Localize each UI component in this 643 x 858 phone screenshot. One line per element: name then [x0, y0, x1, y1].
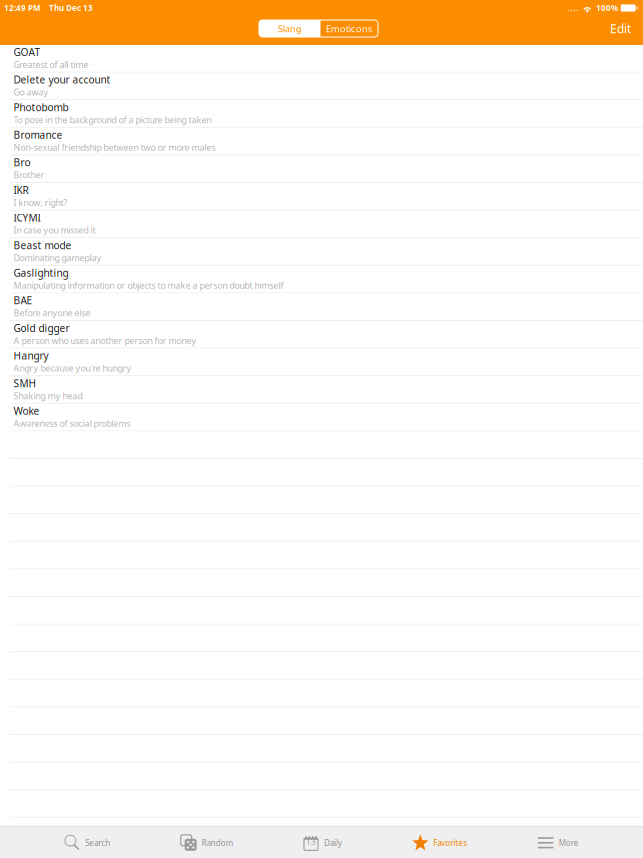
staticText: Dominating gameplay [13, 252, 101, 264]
button[interactable]: 13 [297, 827, 348, 858]
staticText: Awareness of social problems [13, 417, 130, 429]
button[interactable]: Search [58, 827, 116, 858]
button[interactable]: Edit [598, 16, 643, 41]
staticText: Greatest of all time [13, 58, 88, 70]
staticText: BAE [13, 293, 32, 307]
button[interactable]: Bromance [0, 128, 643, 155]
staticText: Emoticons [326, 22, 373, 35]
button[interactable]: Random [175, 827, 239, 858]
button[interactable]: Gaslighting [0, 266, 643, 293]
button[interactable] [0, 818, 643, 845]
button[interactable]: More [532, 827, 585, 858]
staticText: Shaking my head [13, 390, 82, 402]
staticText: SMH [13, 376, 36, 390]
staticText: Hangry [13, 349, 48, 362]
button[interactable]: Hangry [0, 349, 643, 376]
button[interactable]: Favorites [406, 827, 473, 858]
staticText: Thu Dec 13 [49, 3, 93, 13]
staticText: Search [85, 837, 110, 848]
staticText: Gaslighting [13, 266, 68, 280]
staticText: Woke [13, 404, 39, 418]
staticText: Angry because you're hungry [13, 362, 131, 374]
button[interactable]: SMH [0, 376, 643, 404]
staticText: To pose in the background of a picture b… [13, 114, 211, 126]
staticText: A person who uses another person for mon… [13, 334, 196, 346]
button[interactable] [0, 707, 643, 735]
button[interactable]: GOAT [0, 45, 643, 73]
button[interactable]: IKR [0, 183, 643, 211]
button[interactable]: Woke [0, 404, 643, 431]
button[interactable]: BAE [0, 293, 643, 321]
staticText: Slang [278, 22, 302, 35]
button[interactable]: Emoticons [320, 20, 378, 37]
staticText: Bro [13, 155, 30, 169]
button[interactable]: Gold digger [0, 321, 643, 349]
staticText: IKR [13, 183, 28, 197]
staticText: Go away [13, 86, 48, 98]
button[interactable]: Slang [259, 20, 320, 37]
staticText: ICYMI [13, 211, 40, 224]
staticText: I know, right? [13, 196, 67, 208]
staticText: Non-sexual friendship between two or mor… [13, 141, 215, 153]
staticText: Favorites [433, 837, 467, 848]
staticText: Photobomb [13, 100, 68, 114]
staticText: More [559, 837, 579, 848]
staticText: 13 [306, 836, 316, 847]
staticText: Random [202, 837, 233, 848]
button[interactable]: Photobomb [0, 100, 643, 128]
staticText: Manipulating information or objects to m… [13, 279, 283, 291]
staticText: 100% [596, 3, 618, 13]
staticText: Bromance [13, 128, 62, 142]
staticText: Before anyone else [13, 307, 90, 319]
staticText: Brother [13, 169, 44, 181]
staticText: Gold digger [13, 321, 69, 335]
button[interactable]: ICYMI [0, 211, 643, 238]
button[interactable] [0, 569, 643, 597]
staticText: Edit [610, 20, 631, 36]
staticText: Delete your account [13, 73, 110, 86]
button[interactable]: Beast mode [0, 238, 643, 266]
staticText: In case you missed it [13, 224, 95, 236]
staticText: 12:49 PM [4, 3, 41, 13]
staticText: GOAT [13, 45, 40, 59]
staticText: Daily [324, 837, 342, 848]
staticText: Beast mode [13, 238, 71, 252]
button[interactable] [0, 431, 643, 459]
button[interactable]: Delete your account [0, 73, 643, 100]
button[interactable]: Bro [0, 155, 643, 183]
